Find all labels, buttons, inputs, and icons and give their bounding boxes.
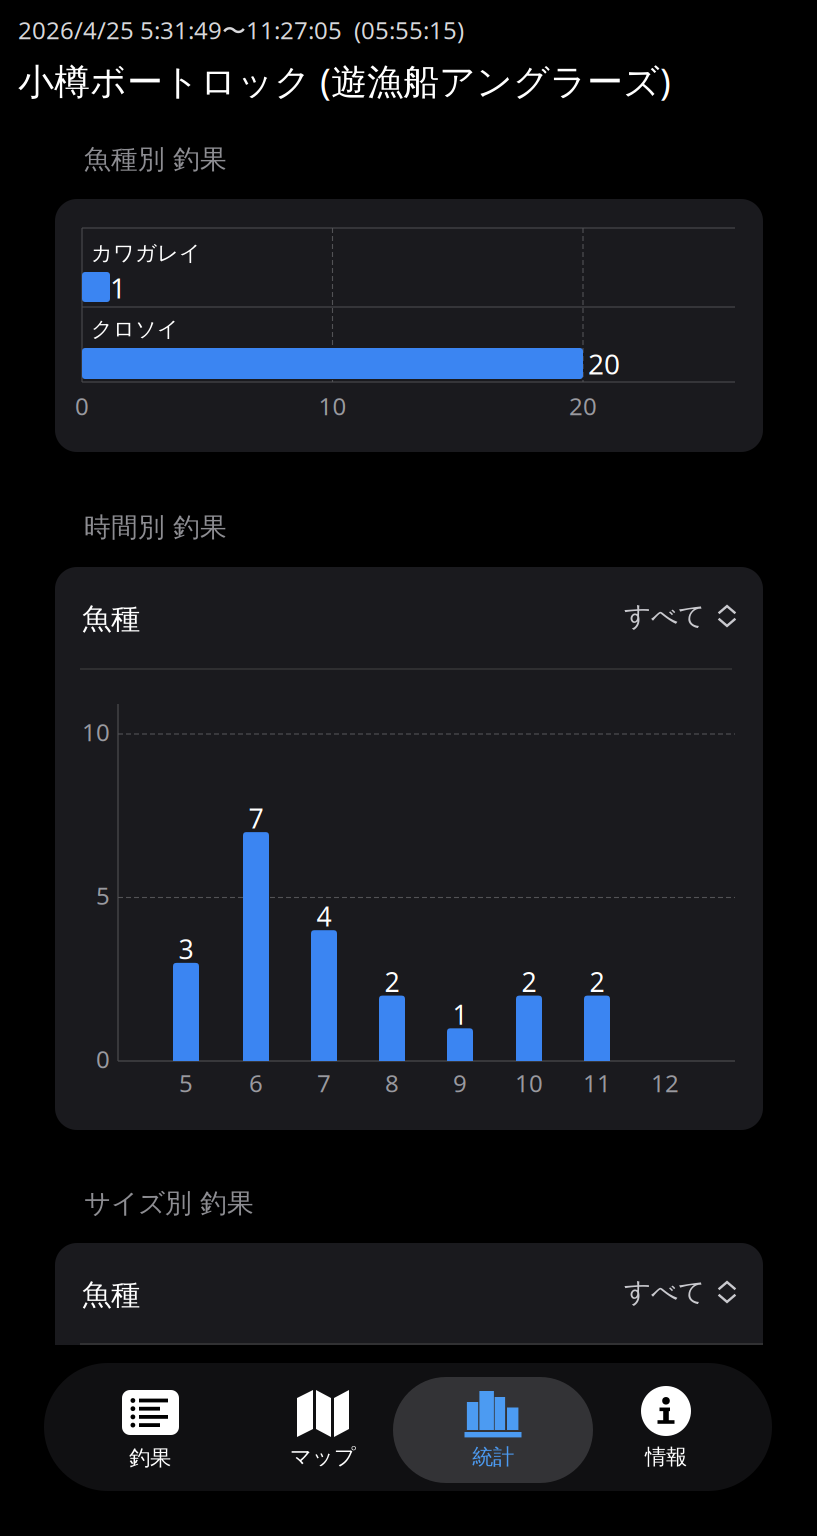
staticText: 小樽ボートロック (遊漁船アングラーズ) — [18, 57, 671, 105]
staticText: 8 — [385, 1067, 399, 1099]
staticText: 5 — [179, 1067, 193, 1099]
staticText: 2 — [589, 964, 604, 999]
staticText: 時間別 釣果 — [84, 511, 227, 544]
staticText: 10 — [318, 390, 346, 422]
staticText: マップ — [290, 1444, 356, 1470]
staticText: 7 — [317, 1067, 331, 1099]
staticText: すべて — [624, 1276, 705, 1308]
staticText: サイズ別 釣果 — [84, 1187, 254, 1220]
staticText: 魚種 — [82, 1277, 140, 1313]
button[interactable]: 統計 — [393, 1363, 593, 1491]
button[interactable]: 情報 — [569, 1363, 744, 1491]
staticText: 釣果 — [129, 1445, 171, 1471]
staticText: 2026/4/25 5:31:49〜11:27:05 (05:55:15) — [18, 14, 464, 46]
staticText: 情報 — [645, 1444, 687, 1470]
staticText: 0 — [96, 1043, 110, 1075]
staticText: すべて — [624, 600, 705, 632]
button[interactable]: 釣果 — [64, 1363, 237, 1491]
staticText: 7 — [248, 800, 263, 836]
staticText: 2 — [521, 964, 536, 999]
staticText: 9 — [453, 1067, 467, 1099]
button[interactable]: すべて — [624, 1270, 754, 1314]
staticText: カワガレイ — [91, 240, 201, 266]
staticText: 12 — [651, 1067, 679, 1099]
staticText: 6 — [249, 1067, 263, 1099]
staticText: 11 — [583, 1067, 611, 1099]
staticText: 5 — [96, 880, 110, 911]
staticText: 10 — [515, 1067, 543, 1099]
staticText: 10 — [82, 716, 110, 748]
staticText: 魚種別 釣果 — [84, 143, 227, 176]
staticText: 4 — [316, 898, 331, 934]
staticText: 20 — [569, 390, 597, 422]
staticText: クロソイ — [91, 316, 179, 342]
button[interactable]: マップ — [238, 1363, 408, 1491]
staticText: 1 — [452, 997, 467, 1032]
staticText: 2 — [384, 964, 399, 999]
staticText: 統計 — [472, 1444, 514, 1470]
staticText: 3 — [178, 931, 193, 967]
staticText: 0 — [75, 390, 89, 422]
staticText: 1 — [110, 269, 126, 306]
button[interactable]: すべて — [624, 594, 754, 638]
staticText: 魚種 — [82, 601, 140, 637]
staticText: 20 — [588, 345, 620, 382]
